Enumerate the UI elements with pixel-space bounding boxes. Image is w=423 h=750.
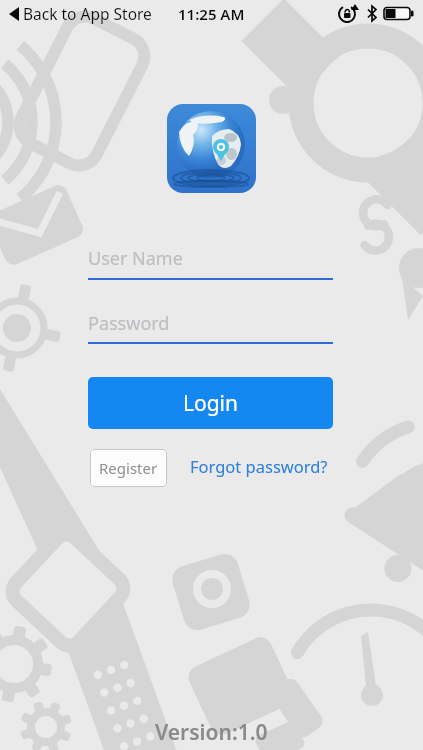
button[interactable]: Register [90, 449, 167, 487]
button[interactable] [88, 240, 333, 280]
staticText: Password [88, 311, 170, 336]
staticText: Login [183, 389, 239, 418]
staticText: Version:1.0 [155, 718, 268, 747]
staticText: Forgot password? [190, 455, 328, 477]
button[interactable]: Back to App Store [8, 0, 152, 27]
button[interactable]: Login [88, 377, 333, 429]
staticText: Back to App Store [23, 3, 152, 24]
staticText: User Name [88, 246, 183, 271]
staticText: 11:25 AM [178, 4, 245, 24]
button[interactable]: Forgot password? [190, 455, 328, 477]
button[interactable] [88, 305, 333, 344]
staticText: Register [99, 458, 158, 478]
